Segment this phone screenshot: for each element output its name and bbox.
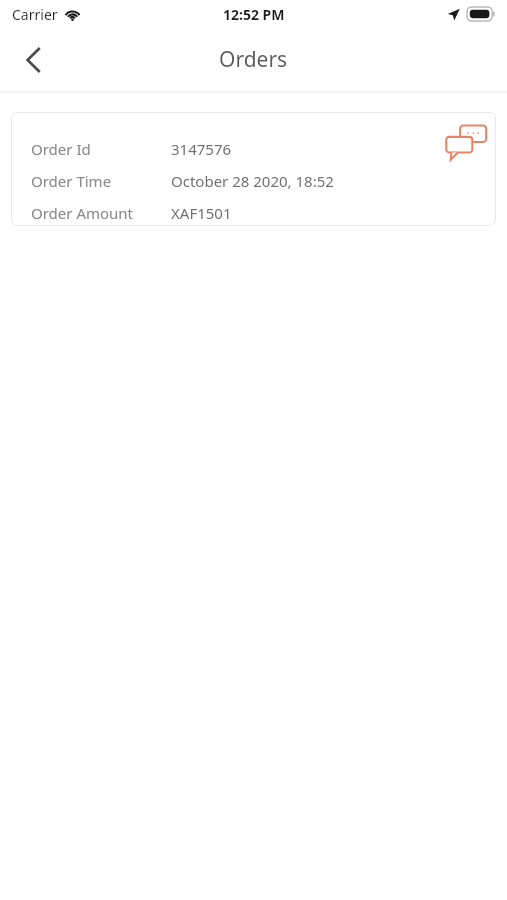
staticText: Order Time [31, 171, 112, 191]
staticText: Order Amount [31, 203, 134, 223]
staticText: Carrier [12, 5, 58, 24]
staticText: October 28 2020, 18:52 [171, 171, 334, 191]
button[interactable]: Order Id [11, 112, 496, 226]
staticText: Order Id [31, 139, 91, 159]
staticText: XAF1501 [171, 203, 232, 223]
staticText: 12:52 PM [223, 5, 285, 24]
button[interactable]: Chat about this order [443, 120, 489, 166]
staticText: 3147576 [171, 139, 232, 159]
button[interactable]: Back [12, 38, 56, 82]
staticText: Orders [219, 45, 288, 74]
